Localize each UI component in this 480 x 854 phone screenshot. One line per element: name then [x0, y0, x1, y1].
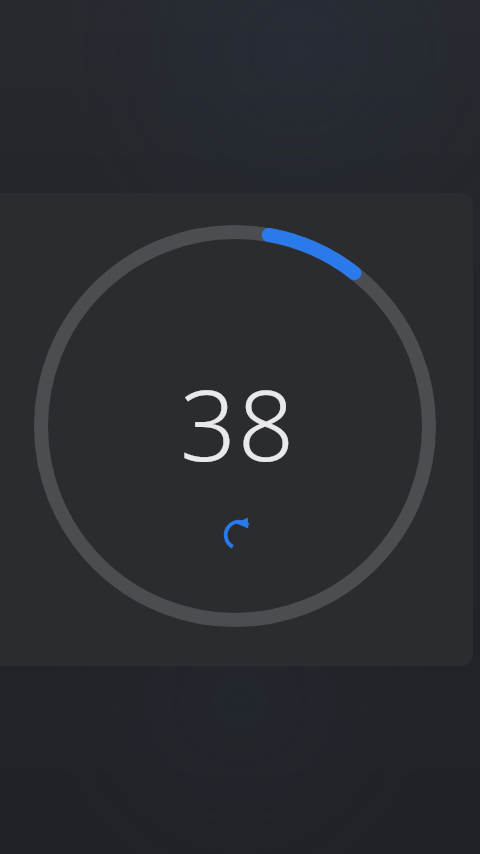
button[interactable]: Refresh — [216, 512, 262, 558]
staticText: 38 — [180, 356, 296, 489]
